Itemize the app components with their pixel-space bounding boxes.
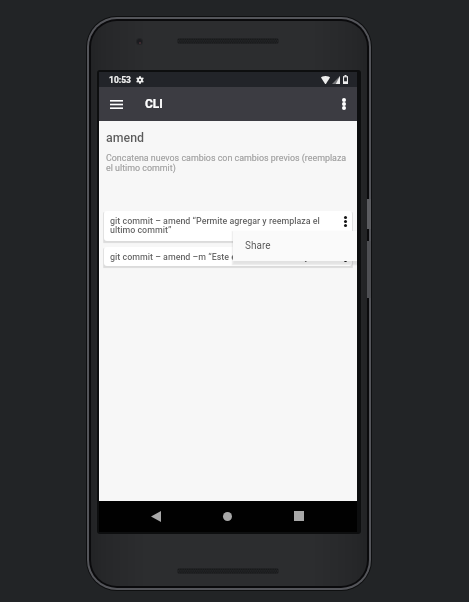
staticText: CLI	[145, 97, 163, 111]
button[interactable]: Share	[233, 231, 357, 261]
button[interactable]: More options	[331, 87, 357, 121]
button[interactable]: Home	[214, 503, 240, 529]
button[interactable]: More options	[338, 247, 352, 266]
button[interactable]: Recent apps	[286, 503, 312, 529]
staticText: git commit – amend –m “Este es el nuevo …	[110, 252, 316, 262]
staticText: amend	[106, 130, 145, 145]
staticText: 10:53	[109, 75, 131, 85]
button[interactable]: git commit – amend –m “Este es el nuevo …	[104, 247, 352, 266]
staticText: Concatena nuevos cambios con cambios pre…	[106, 153, 351, 173]
button[interactable]: More options	[338, 211, 352, 231]
button[interactable]: Back	[143, 503, 169, 529]
staticText: git commit – amend “Permite agregar y re…	[110, 216, 330, 235]
button[interactable]: Open navigation drawer	[99, 87, 133, 121]
button[interactable]: git commit – amend “Permite agregar y re…	[104, 211, 352, 241]
staticText: Share	[245, 240, 271, 252]
